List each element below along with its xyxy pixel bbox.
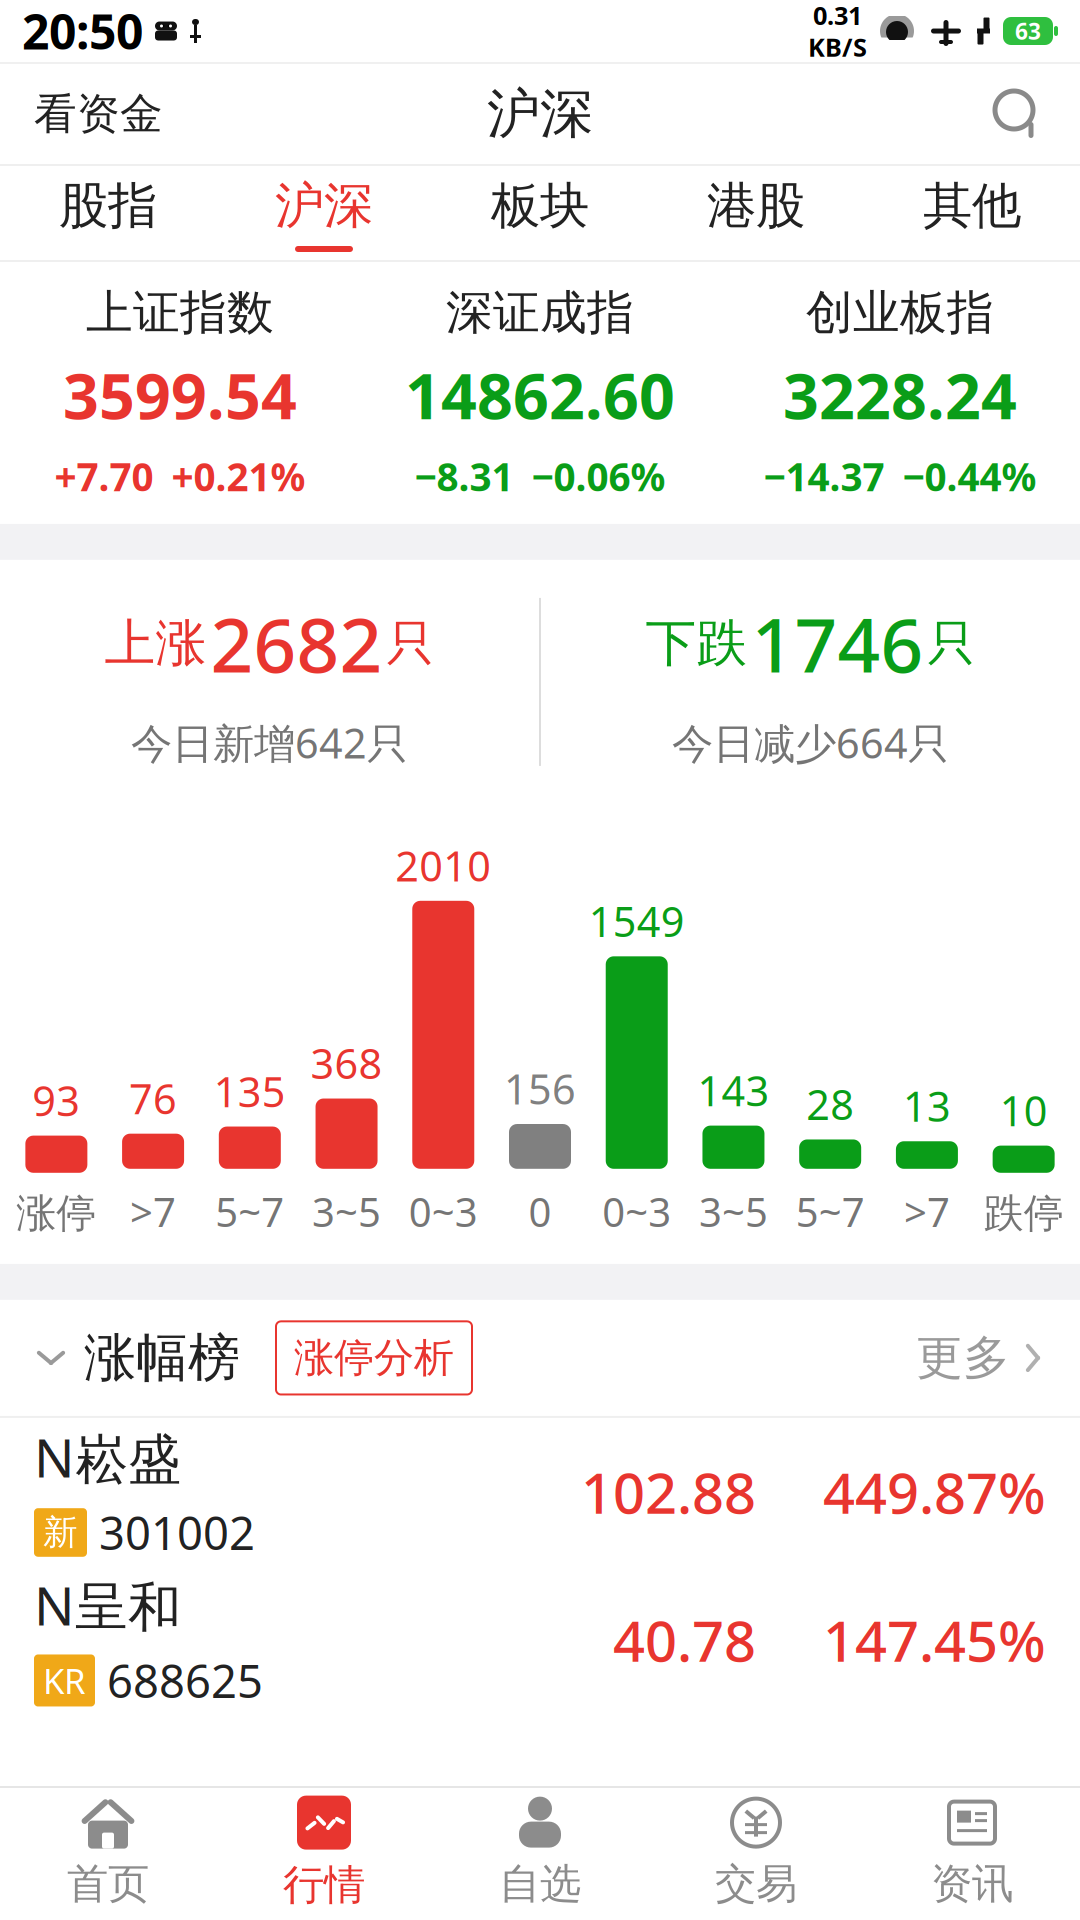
button[interactable]: 深证成指: [360, 262, 720, 524]
staticText: +7.70: [54, 450, 153, 502]
staticText: 沪深: [275, 175, 373, 236]
staticText: 368: [310, 1036, 382, 1090]
button[interactable]: 行情: [216, 1782, 432, 1920]
staticText: >7: [904, 1185, 950, 1238]
staticText: 沪深: [487, 81, 593, 147]
staticText: 13: [903, 1078, 951, 1133]
staticText: 板块: [491, 175, 589, 236]
staticText: 上证指数: [86, 284, 274, 341]
staticText: 2010: [395, 838, 491, 893]
button[interactable]: Search: [984, 87, 1050, 141]
staticText: 3228.24: [783, 353, 1017, 436]
staticText: KB/S: [808, 30, 867, 64]
staticText: 涨停分析: [294, 1333, 454, 1382]
staticText: 76: [129, 1071, 177, 1126]
staticText: 0.31: [813, 0, 862, 32]
staticText: 新: [43, 1511, 78, 1554]
button[interactable]: 涨幅榜: [34, 1318, 240, 1398]
staticText: 下跌: [645, 612, 747, 674]
staticText: 93: [32, 1073, 80, 1128]
staticText: 5~7: [796, 1185, 865, 1238]
staticText: −8.31: [414, 450, 513, 502]
button[interactable]: 其他: [864, 166, 1080, 260]
staticText: 今日新增642只: [131, 715, 408, 770]
staticText: 20:50: [22, 0, 143, 63]
staticText: 更多: [916, 1329, 1010, 1387]
button[interactable]: 创业板指: [720, 262, 1080, 524]
staticText: 涨幅榜: [84, 1326, 240, 1390]
button[interactable]: N崧盛: [0, 1418, 1080, 1566]
staticText: −14.37: [763, 450, 884, 502]
staticText: 资讯: [931, 1859, 1013, 1909]
staticText: 3~5: [699, 1185, 768, 1238]
staticText: N崧盛: [34, 1421, 181, 1492]
staticText: 0~3: [602, 1185, 671, 1238]
staticText: 143: [697, 1063, 769, 1118]
staticText: 1746: [751, 594, 923, 693]
button[interactable]: 港股: [648, 166, 864, 260]
staticText: 156: [504, 1061, 576, 1116]
staticText: 自选: [499, 1859, 581, 1909]
button[interactable]: 资讯: [864, 1783, 1080, 1920]
staticText: 0~3: [409, 1185, 478, 1238]
button[interactable]: 板块: [432, 166, 648, 260]
staticText: 今日减少664只: [672, 715, 949, 770]
staticText: 其他: [923, 175, 1021, 236]
staticText: −0.44%: [902, 450, 1036, 502]
staticText: 交易: [715, 1859, 797, 1909]
staticText: 14862.60: [405, 353, 675, 436]
staticText: 行情: [283, 1860, 365, 1910]
staticText: 102.88: [581, 1455, 756, 1529]
staticText: 深证成指: [446, 284, 634, 341]
staticText: N呈和: [34, 1569, 181, 1640]
staticText: 跌停: [984, 1189, 1064, 1238]
staticText: 301002: [99, 1502, 255, 1563]
staticText: 涨停: [16, 1189, 96, 1238]
button[interactable]: 交易: [648, 1783, 864, 1920]
button[interactable]: 首页: [0, 1783, 216, 1920]
staticText: 147.45%: [823, 1603, 1046, 1677]
button[interactable]: 更多: [916, 1321, 1046, 1395]
staticText: 688625: [107, 1650, 263, 1711]
staticText: 10: [1000, 1083, 1048, 1138]
button[interactable]: 上涨: [0, 560, 539, 804]
staticText: 只: [386, 614, 434, 673]
staticText: 1549: [589, 893, 685, 948]
staticText: 只: [927, 614, 975, 673]
button[interactable]: N呈和: [0, 1566, 1080, 1714]
staticText: 看资金: [34, 88, 163, 140]
staticText: 40.78: [613, 1603, 756, 1677]
staticText: 135: [214, 1064, 286, 1119]
staticText: KR: [43, 1657, 86, 1703]
button[interactable]: 股指: [0, 166, 216, 260]
staticText: 首页: [67, 1859, 149, 1909]
staticText: 63: [1015, 16, 1041, 46]
button[interactable]: 自选: [432, 1783, 648, 1920]
staticText: >7: [130, 1185, 176, 1238]
staticText: 3599.54: [63, 353, 297, 436]
staticText: 449.87%: [823, 1455, 1046, 1529]
button[interactable]: 看资金: [30, 76, 167, 152]
staticText: 28: [806, 1077, 854, 1131]
staticText: 2682: [210, 594, 382, 693]
staticText: −0.06%: [531, 450, 665, 502]
staticText: 0: [528, 1185, 551, 1238]
staticText: 港股: [707, 175, 805, 236]
staticText: 上涨: [104, 612, 206, 674]
button[interactable]: 涨停分析: [276, 1321, 472, 1394]
staticText: 5~7: [215, 1185, 284, 1238]
button[interactable]: 下跌: [541, 560, 1080, 804]
staticText: 股指: [59, 175, 157, 236]
staticText: +0.21%: [171, 450, 305, 502]
staticText: 3~5: [312, 1185, 381, 1238]
button[interactable]: 上证指数: [0, 262, 360, 524]
button[interactable]: 沪深: [216, 166, 432, 260]
staticText: 创业板指: [806, 284, 994, 341]
